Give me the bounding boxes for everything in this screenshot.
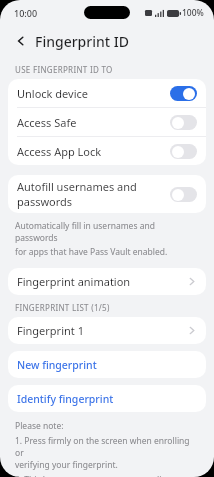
staticText: 100% <box>182 7 204 19</box>
staticText: FINGERPRINT LIST (1/5) <box>15 302 110 313</box>
button[interactable]: Fingerprint 1 <box>8 317 206 344</box>
staticText: Identify fingerprint <box>17 392 114 406</box>
button[interactable]: Access Safe <box>8 108 206 136</box>
staticText: passwords <box>17 194 73 209</box>
staticText: USE FINGERPRINT ID TO <box>15 64 113 75</box>
staticText: Unlock device <box>17 86 170 101</box>
staticText: Fingerprint ID <box>35 32 129 51</box>
button[interactable]: Unlock device <box>8 79 206 107</box>
staticText: New fingerprint <box>17 358 97 372</box>
staticText: Fingerprint 1 <box>17 323 189 338</box>
staticText: 1. Press firmly on the screen when enrol… <box>15 435 199 459</box>
staticText: verifying your fingerprint. <box>15 459 118 471</box>
staticText: Automatically fill in usernames and pass… <box>15 220 199 244</box>
staticText: Autofill usernames and <box>17 179 137 194</box>
button[interactable]: Autofill usernames and <box>8 175 206 213</box>
staticText: Please note: <box>15 420 64 432</box>
staticText: Access Safe <box>17 115 170 130</box>
staticText: Access App Lock <box>17 144 170 159</box>
button[interactable]: Access App Lock <box>8 137 206 165</box>
staticText: for apps that have Pass Vault enabled. <box>15 246 168 258</box>
button[interactable]: Fingerprint animation <box>8 268 206 295</box>
staticText: 2. Third-party screen protectors or dirt… <box>15 474 181 477</box>
staticText: Fingerprint animation <box>17 274 189 289</box>
button[interactable]: Identify fingerprint <box>8 385 206 412</box>
button[interactable]: New fingerprint <box>8 351 206 378</box>
button[interactable]: Back <box>12 32 30 50</box>
staticText: 10:00 <box>14 7 38 19</box>
